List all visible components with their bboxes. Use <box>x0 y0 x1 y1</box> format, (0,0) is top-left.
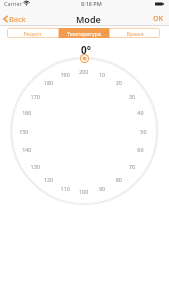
staticText: 0° <box>81 43 91 57</box>
staticText: Рецепт <box>23 30 42 37</box>
staticText: Back <box>9 14 26 24</box>
staticText: OK <box>153 14 164 24</box>
staticText: Mode <box>76 13 101 25</box>
staticText: Температура <box>67 30 101 37</box>
button[interactable]: Время <box>110 28 160 38</box>
button[interactable]: Рецепт <box>7 28 58 38</box>
button[interactable]: Temperature dial handle <box>80 54 89 63</box>
staticText: Carrier <box>4 0 22 7</box>
button[interactable]: Back <box>0 12 29 26</box>
staticText: 8:18 PM <box>81 0 102 7</box>
staticText: Время <box>126 30 144 37</box>
button[interactable]: Температура <box>59 28 109 38</box>
button[interactable]: OK <box>148 12 169 26</box>
